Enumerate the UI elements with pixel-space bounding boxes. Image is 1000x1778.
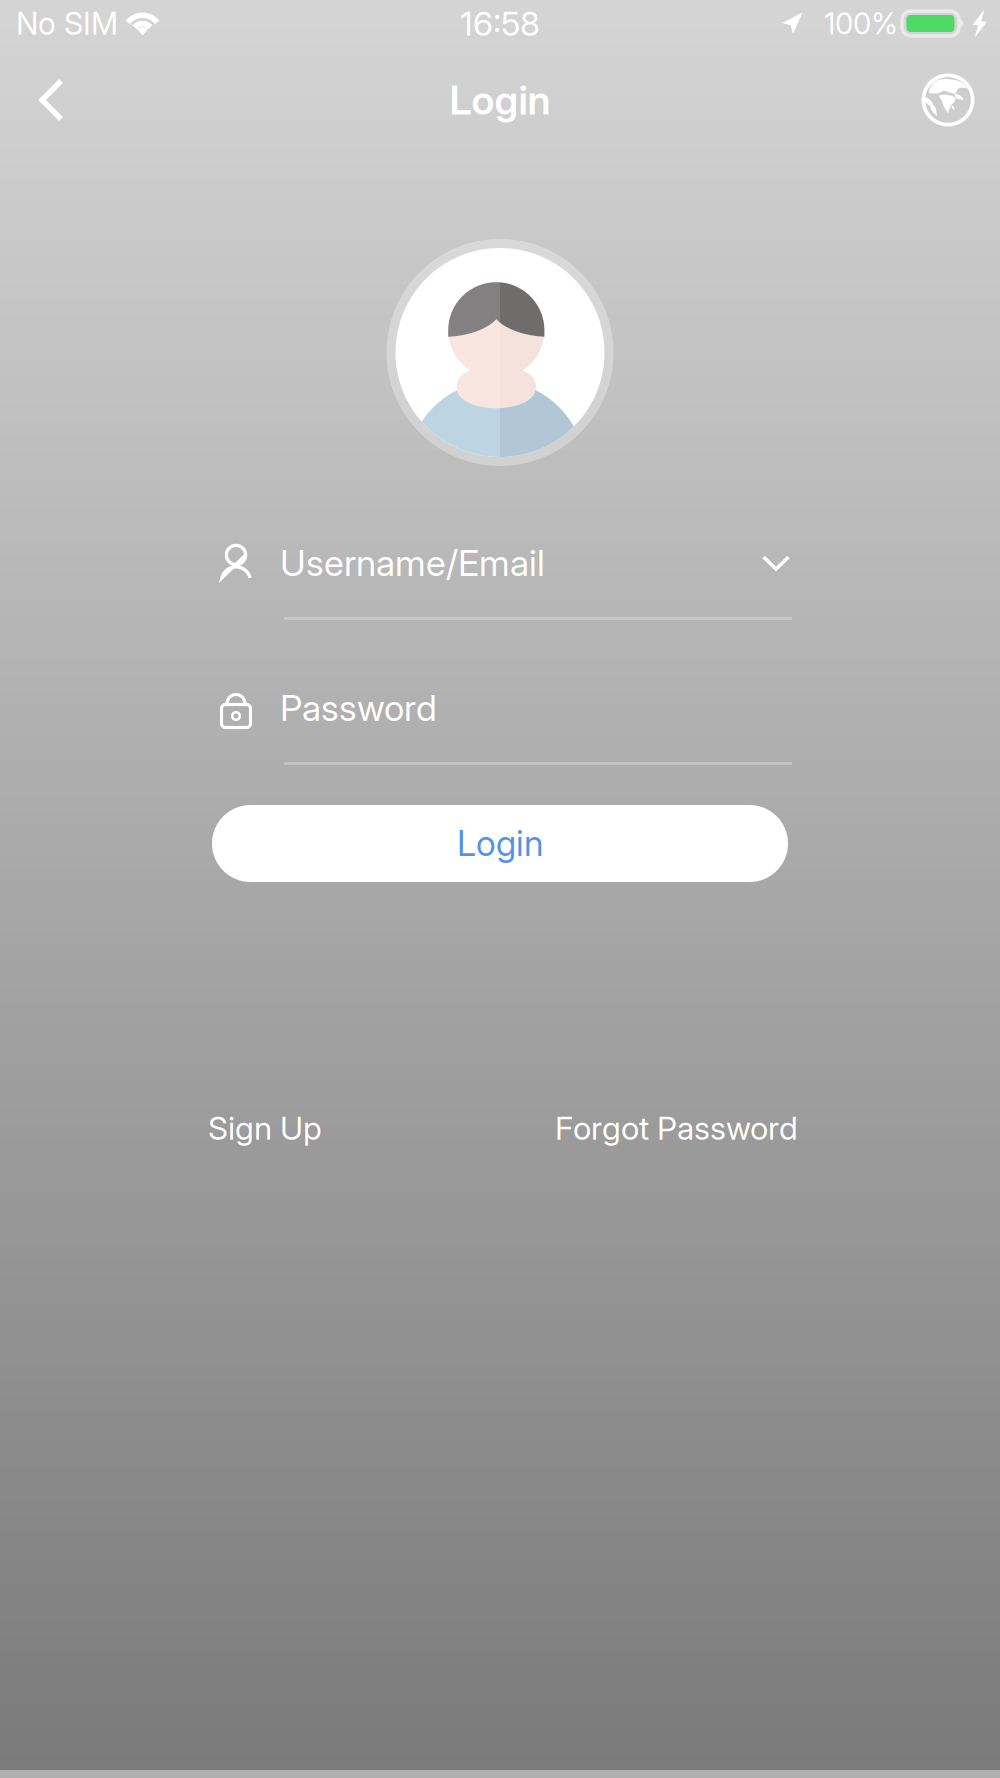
staticText: 16:58 bbox=[460, 3, 540, 44]
staticText: Login bbox=[449, 76, 550, 124]
button[interactable]: Sign Up bbox=[130, 1097, 400, 1159]
button[interactable]: Forgot Password bbox=[483, 1097, 870, 1159]
staticText: Sign Up bbox=[208, 1109, 322, 1147]
staticText: No SIM bbox=[16, 5, 118, 42]
staticText: Username/Email bbox=[280, 541, 545, 585]
button[interactable]: Login bbox=[212, 805, 788, 882]
button[interactable]: Change language bbox=[902, 54, 994, 146]
staticText: 100% bbox=[824, 6, 898, 41]
staticText: Forgot Password bbox=[555, 1109, 798, 1147]
staticText: Login bbox=[457, 822, 543, 864]
staticText: Password bbox=[280, 686, 437, 730]
button[interactable]: Back bbox=[6, 54, 98, 146]
